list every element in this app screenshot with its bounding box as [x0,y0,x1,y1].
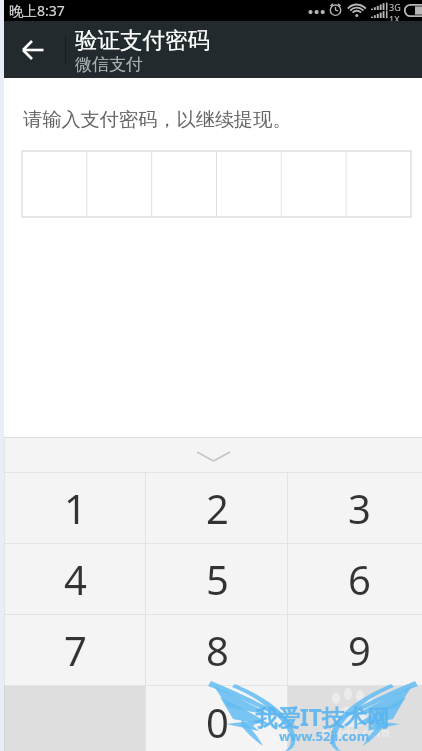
staticText: 微信支付 [75,54,143,75]
button[interactable]: Password digit 3 [151,151,216,217]
button[interactable]: Password digit 4 [216,151,281,217]
button[interactable]: 3 [288,473,422,543]
staticText: 4 [64,552,87,606]
button[interactable]: Password digit 5 [281,151,346,217]
staticText: 晚上8:37 [9,1,65,20]
staticText: 验证支付密码 [75,26,210,54]
button[interactable]: Password digit 6 [346,151,411,217]
button[interactable]: 1 [4,473,146,543]
staticText: 0 [206,695,229,749]
staticText: 3G [389,1,401,13]
button[interactable]: 0 [146,686,288,751]
button[interactable]: 8 [146,615,288,685]
staticText: 1 [64,481,87,535]
button[interactable]: Password digit 1 [22,151,86,217]
staticText: 9 [348,623,371,677]
button[interactable]: 6 [288,544,422,614]
staticText: 7 [64,623,87,677]
button[interactable]: 9 [288,615,422,685]
button[interactable]: 2 [146,473,288,543]
button[interactable]: 7 [4,615,146,685]
button[interactable]: 4 [4,544,146,614]
staticText: 6 [348,552,371,606]
staticText: 5 [206,552,229,606]
staticText: www.52ji.com [279,727,370,745]
staticText: 我爱IT技术网 [255,702,390,733]
button[interactable]: 5 [146,544,288,614]
staticText: baidu.com [322,723,390,741]
button[interactable]: Password digit 2 [86,151,151,217]
button[interactable]: Back [4,21,61,78]
staticText: 1X [389,13,400,22]
staticText: 请输入支付密码，以继续提现。 [23,108,292,132]
button[interactable]: Delete [288,686,422,751]
staticText: 8 [206,623,229,677]
staticText: 3 [348,481,371,535]
staticText: 2 [206,481,229,535]
